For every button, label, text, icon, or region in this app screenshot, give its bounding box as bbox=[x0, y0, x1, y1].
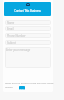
staticText: Contact This Business bbox=[14, 9, 41, 12]
button[interactable]: Enter your message bbox=[5, 47, 51, 68]
staticText: Subject bbox=[7, 41, 16, 45]
button[interactable]: Email bbox=[5, 26, 51, 31]
button[interactable]: Send bbox=[19, 86, 25, 90]
button[interactable]: Phone Number bbox=[5, 33, 51, 38]
other: Email bbox=[26, 3, 30, 6]
button[interactable]: Subject bbox=[5, 40, 51, 45]
staticText: Phone Number bbox=[7, 34, 26, 38]
staticText: Send bbox=[19, 87, 25, 90]
staticText: Name bbox=[7, 21, 15, 25]
button[interactable]: Email bbox=[4, 2, 51, 16]
button[interactable]: Name bbox=[5, 20, 51, 25]
staticText: Input error & format of site key may cau… bbox=[5, 81, 54, 84]
staticText: invalid bbox=[5, 85, 13, 88]
staticText: Email bbox=[7, 27, 14, 31]
staticText: Enter your message bbox=[6, 48, 31, 52]
